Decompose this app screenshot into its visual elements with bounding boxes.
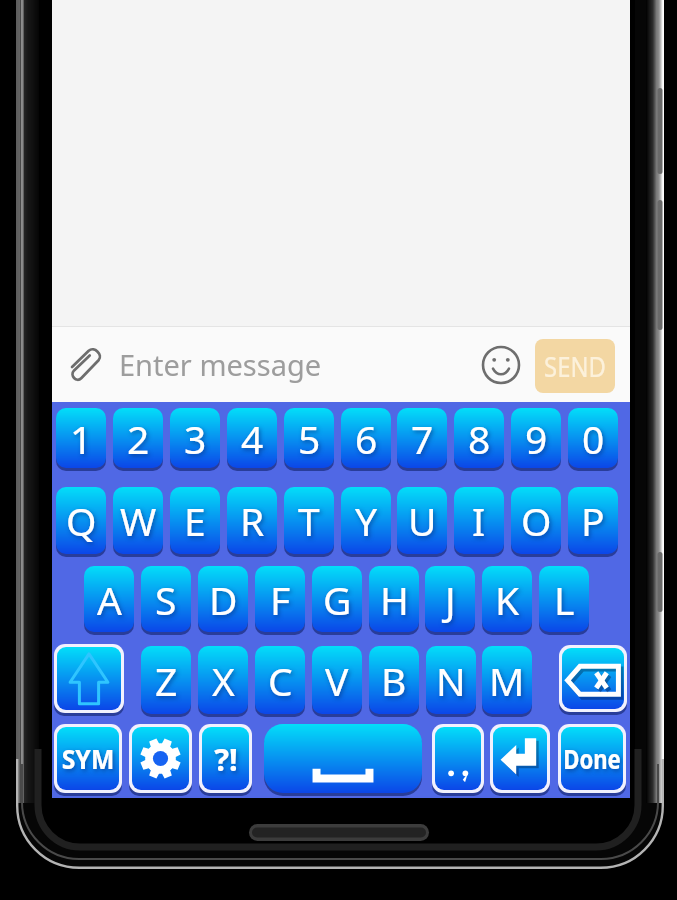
button[interactable]: K xyxy=(482,566,532,632)
button[interactable]: 4 xyxy=(227,408,277,468)
staticText: N xyxy=(436,654,466,707)
button[interactable]: Emoji xyxy=(478,342,524,388)
staticText: E xyxy=(184,494,206,547)
button[interactable] xyxy=(562,648,624,709)
button[interactable]: T xyxy=(284,487,334,554)
button[interactable]: L xyxy=(539,566,589,632)
other: Backspace xyxy=(52,402,120,472)
button[interactable]: C xyxy=(255,646,305,714)
staticText: 5 xyxy=(298,412,321,465)
staticText: G xyxy=(323,573,352,626)
staticText: W xyxy=(120,494,157,547)
other: Settings xyxy=(52,402,115,474)
button[interactable]: D xyxy=(198,566,248,632)
button[interactable]: 1 xyxy=(56,408,106,468)
other: Space xyxy=(52,402,210,474)
button[interactable]: M xyxy=(482,646,532,714)
staticText: B xyxy=(381,654,407,707)
staticText: 8 xyxy=(468,412,491,465)
staticText: D xyxy=(209,573,238,626)
button[interactable]: Z xyxy=(141,646,191,714)
staticText: SYM xyxy=(57,740,119,777)
staticText: L xyxy=(554,573,575,626)
button[interactable]: E xyxy=(170,487,220,554)
button[interactable]: ?! xyxy=(202,727,249,790)
button[interactable]: H xyxy=(369,566,419,632)
button[interactable]: SEND xyxy=(535,339,615,393)
other: Enter xyxy=(52,402,112,474)
staticText: SEND xyxy=(535,347,615,385)
button[interactable]: O xyxy=(511,487,561,554)
button[interactable]: SYM xyxy=(57,727,119,790)
staticText: Enter message xyxy=(119,345,322,384)
staticText: J xyxy=(445,573,456,626)
button[interactable]: A xyxy=(84,566,134,632)
staticText: 7 xyxy=(411,412,434,465)
staticText: K xyxy=(495,573,520,626)
staticText: F xyxy=(270,573,291,626)
button[interactable]: X xyxy=(198,646,248,714)
staticText: V xyxy=(325,654,349,707)
button[interactable] xyxy=(435,727,481,790)
button[interactable]: G xyxy=(312,566,362,632)
staticText: O xyxy=(521,494,552,547)
button[interactable]: U xyxy=(397,487,447,554)
button[interactable]: Attach file xyxy=(63,341,111,389)
button[interactable]: Done xyxy=(561,727,623,790)
button[interactable]: B xyxy=(369,646,419,714)
staticText: X xyxy=(212,654,235,707)
button[interactable]: 5 xyxy=(284,408,334,468)
staticText: S xyxy=(155,573,177,626)
button[interactable]: V xyxy=(312,646,362,714)
button[interactable]: I xyxy=(454,487,504,554)
button[interactable] xyxy=(57,647,121,710)
button[interactable]: 8 xyxy=(454,408,504,468)
staticText: Y xyxy=(355,494,378,547)
button[interactable]: N xyxy=(426,646,476,714)
button[interactable]: F xyxy=(255,566,305,632)
staticText: 4 xyxy=(241,412,264,465)
button[interactable] xyxy=(132,727,189,790)
button[interactable]: 0 xyxy=(568,408,618,468)
staticText: ?! xyxy=(202,738,249,780)
staticText: C xyxy=(268,654,293,707)
staticText: 1 xyxy=(70,412,93,465)
staticText: U xyxy=(408,494,437,547)
staticText: H xyxy=(380,573,409,626)
button[interactable] xyxy=(264,724,422,793)
button[interactable]: 7 xyxy=(397,408,447,468)
button[interactable]: 9 xyxy=(511,408,561,468)
button[interactable]: S xyxy=(141,566,191,632)
staticText: P xyxy=(581,494,605,547)
button[interactable]: Y xyxy=(341,487,391,554)
button[interactable]: W xyxy=(113,487,163,554)
other: Shift xyxy=(52,402,122,474)
other: Period and comma xyxy=(52,402,104,474)
button[interactable] xyxy=(493,727,547,790)
button[interactable]: J xyxy=(425,566,475,632)
staticText: 9 xyxy=(525,412,548,465)
staticText: M xyxy=(489,654,525,707)
staticText: 2 xyxy=(127,412,150,465)
button[interactable]: 2 xyxy=(113,408,163,468)
staticText: A xyxy=(97,573,122,626)
staticText: I xyxy=(472,494,486,547)
staticText: Z xyxy=(155,654,178,707)
button[interactable]: P xyxy=(568,487,618,554)
button[interactable]: R xyxy=(227,487,277,554)
staticText: R xyxy=(240,494,265,547)
staticText: Q xyxy=(66,494,97,547)
staticText: 3 xyxy=(184,412,207,465)
staticText: 6 xyxy=(355,412,378,465)
button[interactable]: 6 xyxy=(341,408,391,468)
button[interactable]: Q xyxy=(56,487,106,554)
button[interactable]: 3 xyxy=(170,408,220,468)
staticText: 0 xyxy=(582,412,605,465)
staticText: T xyxy=(298,494,320,547)
staticText: Done xyxy=(561,740,623,777)
